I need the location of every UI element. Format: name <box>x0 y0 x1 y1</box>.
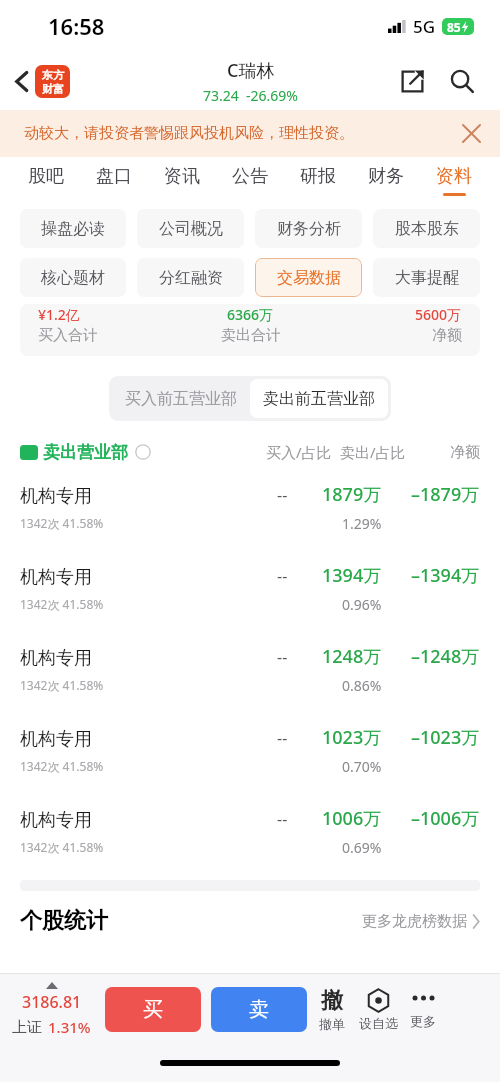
staticText: 上证 <box>12 1018 42 1037</box>
button[interactable]: 机构专用 <box>0 467 500 548</box>
staticText: 研报 <box>300 165 336 188</box>
staticText: 净额 <box>450 443 480 462</box>
button[interactable]: 机构专用 <box>0 710 500 791</box>
button[interactable]: 股本股东 <box>373 209 480 248</box>
staticText: 73.24 -26.69% <box>203 86 298 105</box>
staticText: 东方 <box>42 68 64 82</box>
staticText: 股吧 <box>28 165 64 188</box>
button[interactable]: 股吧 <box>12 157 80 204</box>
staticText: -- <box>277 646 288 668</box>
staticText: 设自选 <box>359 1015 398 1031</box>
staticText: 1248万 <box>322 644 382 669</box>
staticText: 卖出合计 <box>221 326 281 345</box>
staticText: 财务 <box>368 165 404 188</box>
staticText: ¥1.2亿 <box>38 305 80 324</box>
staticText: 股本股东 <box>395 219 459 239</box>
button[interactable]: 资料 <box>420 157 488 204</box>
staticText: 1342次 41.58% <box>20 515 104 531</box>
staticText: 买入/占比 <box>266 442 332 462</box>
button[interactable]: 大事提醒 <box>373 258 480 297</box>
staticText: 机构专用 <box>20 728 92 751</box>
button[interactable]: 更多龙虎榜数据 <box>362 912 480 931</box>
button[interactable]: 买入前五营业部 <box>112 379 250 418</box>
staticText: 买 <box>143 997 163 1022</box>
button[interactable]: 更多 <box>410 989 436 1029</box>
staticText: 更多 <box>410 1013 436 1029</box>
button[interactable]: 买 <box>105 987 201 1032</box>
staticText: 0.86% <box>342 676 382 695</box>
button[interactable]: 财务分析 <box>255 209 362 248</box>
button[interactable]: 分红融资 <box>137 258 244 297</box>
staticText: 公司概况 <box>159 219 223 239</box>
button[interactable]: Search <box>444 63 480 99</box>
staticText: 动较大，请投资者警惕跟风投机风险，理性投资。 <box>24 124 354 143</box>
button[interactable]: 撤 <box>319 987 345 1032</box>
staticText: 5600万 <box>415 305 462 324</box>
staticText: 机构专用 <box>20 566 92 589</box>
staticText: 85 <box>447 19 461 35</box>
staticText: 个股统计 <box>20 907 108 935</box>
staticText: 公告 <box>232 165 268 188</box>
staticText: 1006万 <box>322 806 382 831</box>
staticText: 0.70% <box>342 757 382 776</box>
staticText: -- <box>277 484 288 506</box>
staticText: 卖出/占比 <box>340 442 406 462</box>
staticText: 操盘必读 <box>41 219 105 239</box>
button[interactable]: Share <box>395 64 430 99</box>
button[interactable]: 卖出前五营业部 <box>250 379 388 418</box>
button[interactable]: Back <box>6 57 78 106</box>
staticText: 机构专用 <box>20 809 92 832</box>
staticText: –1394万 <box>411 563 480 588</box>
staticText: 财富 <box>42 82 64 96</box>
button[interactable]: 交易数据 <box>255 258 362 297</box>
staticText: 财务分析 <box>277 219 341 239</box>
staticText: 撤 <box>321 987 343 1015</box>
staticText: 1342次 41.58% <box>20 758 104 774</box>
staticText: 卖出前五营业部 <box>263 389 375 409</box>
staticText: 3186.81 <box>22 991 82 1013</box>
staticText: 更多龙虎榜数据 <box>362 912 467 931</box>
staticText: 机构专用 <box>20 485 92 508</box>
staticText: -- <box>277 727 288 749</box>
staticText: 盘口 <box>96 165 132 188</box>
button[interactable]: 卖 <box>211 987 307 1032</box>
staticText: C瑞林 <box>227 58 275 83</box>
staticText: -- <box>277 565 288 587</box>
button[interactable]: 财务 <box>352 157 420 204</box>
button[interactable]: 盘口 <box>80 157 148 204</box>
staticText: 6366万 <box>227 305 274 324</box>
staticText: 交易数据 <box>277 268 341 288</box>
staticText: 买入合计 <box>38 326 98 345</box>
button[interactable]: Close banner <box>457 119 486 148</box>
staticText: –1879万 <box>411 482 480 507</box>
staticText: 1879万 <box>322 482 382 507</box>
staticText: 净额 <box>432 326 462 345</box>
button[interactable]: 设自选 <box>359 988 398 1031</box>
staticText: 1.31% <box>48 1017 91 1037</box>
staticText: 1.29% <box>342 514 382 533</box>
button[interactable]: 公告 <box>216 157 284 204</box>
staticText: 5G <box>413 15 436 38</box>
staticText: 买入前五营业部 <box>125 389 237 409</box>
button[interactable]: 核心题材 <box>20 258 126 297</box>
staticText: 1394万 <box>322 563 382 588</box>
staticText: 大事提醒 <box>395 268 459 288</box>
button[interactable]: 操盘必读 <box>20 209 126 248</box>
button[interactable]: 研报 <box>284 157 352 204</box>
staticText: 机构专用 <box>20 647 92 670</box>
staticText: 分红融资 <box>159 268 223 288</box>
button[interactable]: 机构专用 <box>0 629 500 710</box>
staticText: 资讯 <box>164 165 200 188</box>
staticText: 1023万 <box>322 725 382 750</box>
button[interactable]: 机构专用 <box>0 548 500 629</box>
staticText: 卖 <box>249 997 269 1022</box>
button[interactable]: 公司概况 <box>137 209 244 248</box>
staticText: 1342次 41.58% <box>20 596 104 612</box>
staticText: 卖出营业部 <box>43 442 128 463</box>
button[interactable]: 资讯 <box>148 157 216 204</box>
staticText: –1248万 <box>411 644 480 669</box>
button[interactable]: 3186.81 <box>12 982 91 1037</box>
button[interactable]: 机构专用 <box>0 791 500 872</box>
staticText: 1342次 41.58% <box>20 839 104 855</box>
staticText: 1342次 41.58% <box>20 677 104 693</box>
